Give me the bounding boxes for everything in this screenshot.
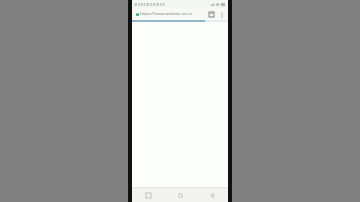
button[interactable]: Tab switcher	[206, 9, 217, 20]
button[interactable]: Home	[164, 188, 196, 202]
button[interactable]: https://www.website.nic.in	[135, 9, 206, 19]
button[interactable]: Recent apps	[132, 188, 164, 202]
button[interactable]: Back	[196, 188, 228, 202]
staticText: https://www.website.nic.in	[140, 11, 193, 17]
button[interactable]: More options	[217, 10, 226, 19]
